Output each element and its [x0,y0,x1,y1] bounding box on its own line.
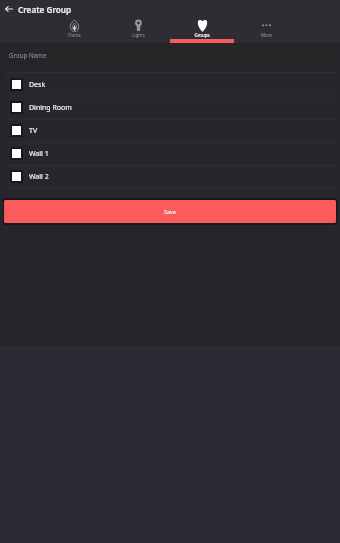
button[interactable]: Wall 2 [4,165,336,188]
button[interactable]: Dining Room [4,96,336,119]
button[interactable]: Wall 1 [4,142,336,165]
button[interactable]: Groups [170,18,234,43]
button[interactable]: Flame [42,18,106,43]
button[interactable]: Lights [106,18,170,43]
staticText: Group Name [9,51,47,59]
staticText: Dining Room [29,103,72,113]
button[interactable]: More [234,18,298,43]
staticText: Save [164,208,176,215]
staticText: Wall 1 [29,149,49,159]
button[interactable]: Group Name [4,43,336,73]
staticText: Wall 2 [29,172,49,182]
staticText: Flame [68,32,81,38]
button[interactable]: Back [0,0,18,18]
button[interactable]: TV [4,119,336,142]
staticText: More [261,32,272,38]
button[interactable]: Save [4,200,336,223]
staticText: Lights [132,32,145,38]
staticText: Groups [194,32,210,38]
staticText: TV [29,126,38,136]
staticText: Desk [29,80,46,90]
button[interactable]: Desk [4,73,336,96]
staticText: Create Group [18,4,72,15]
